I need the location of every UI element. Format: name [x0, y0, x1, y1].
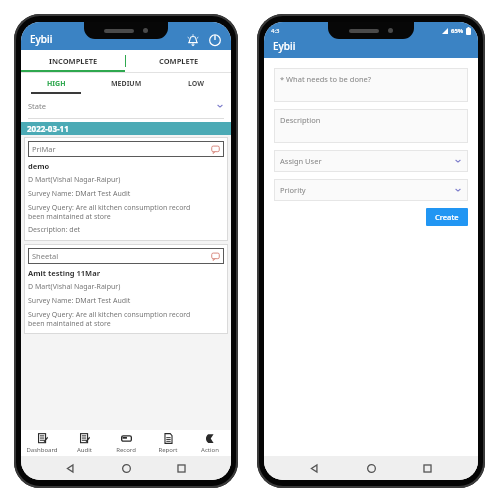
staticText: Amit testing 11Mar [28, 268, 101, 278]
staticText: Eybii [273, 39, 296, 53]
staticText: Audit [77, 446, 92, 454]
staticText: 65% [451, 27, 464, 35]
staticText: Priority [280, 185, 306, 195]
button[interactable]: Audit [63, 430, 105, 456]
staticText: Assign User [280, 156, 322, 166]
button[interactable]: LOW [161, 73, 231, 94]
staticText: D Mart(Vishal Nagar-Raipur) [28, 175, 121, 185]
staticText: LOW [188, 79, 205, 89]
button[interactable]: COMPLETE [126, 50, 231, 72]
button[interactable]: INCOMPLETE [21, 50, 125, 72]
staticText: Survey Query: Are all kitchen consumptio… [28, 310, 191, 328]
staticText: Description: det [28, 225, 81, 235]
staticText: HIGH [47, 79, 66, 89]
button[interactable]: MEDIUM [91, 73, 161, 94]
staticText: Dashboard [26, 446, 58, 454]
button[interactable]: Back [65, 463, 76, 474]
staticText: Survey Query: Are all kitchen consumptio… [28, 203, 191, 221]
staticText: Report [158, 446, 178, 454]
staticText: Description [280, 115, 321, 125]
staticText: 2022-03-11 [27, 123, 69, 134]
button[interactable]: Recents [176, 463, 187, 474]
staticText: Sheetal [32, 251, 59, 261]
button[interactable]: PriMar [24, 137, 228, 241]
button[interactable]: Back [309, 463, 320, 474]
button[interactable]: Notifications [186, 33, 200, 47]
staticText: 4:3 [271, 27, 280, 35]
button[interactable]: Dashboard [21, 430, 63, 456]
staticText: Create [435, 212, 459, 222]
button[interactable]: Home [366, 463, 377, 474]
button[interactable]: Report [147, 430, 189, 456]
button[interactable]: Recents [422, 463, 433, 474]
staticText: Survey Name: DMart Test Audit [28, 189, 131, 199]
button[interactable]: Description [274, 109, 468, 143]
button[interactable]: Action [189, 430, 231, 456]
button[interactable]: Record [105, 430, 147, 456]
button[interactable]: Home [121, 463, 132, 474]
staticText: Action [201, 446, 219, 454]
button[interactable]: HIGH [21, 73, 91, 94]
button[interactable]: Priority [274, 179, 468, 201]
staticText: demo [28, 161, 50, 171]
button[interactable]: Assign User [274, 150, 468, 172]
staticText: State [28, 101, 46, 111]
button[interactable]: Sheetal [24, 244, 228, 334]
staticText: Eybii [30, 32, 53, 46]
staticText: Survey Name: DMart Test Audit [28, 296, 131, 306]
staticText: Record [116, 446, 136, 454]
staticText: COMPLETE [159, 56, 199, 66]
button[interactable]: Power [208, 33, 222, 47]
staticText: INCOMPLETE [49, 56, 98, 66]
button[interactable]: State [28, 94, 224, 118]
staticText: PriMar [32, 144, 56, 154]
button[interactable]: Create [426, 208, 468, 226]
button[interactable]: * What needs to be done? [274, 68, 468, 102]
staticText: D Mart(Vishal Nagar-Raipur) [28, 282, 121, 292]
staticText: MEDIUM [111, 79, 142, 89]
staticText: * What needs to be done? [280, 74, 372, 84]
